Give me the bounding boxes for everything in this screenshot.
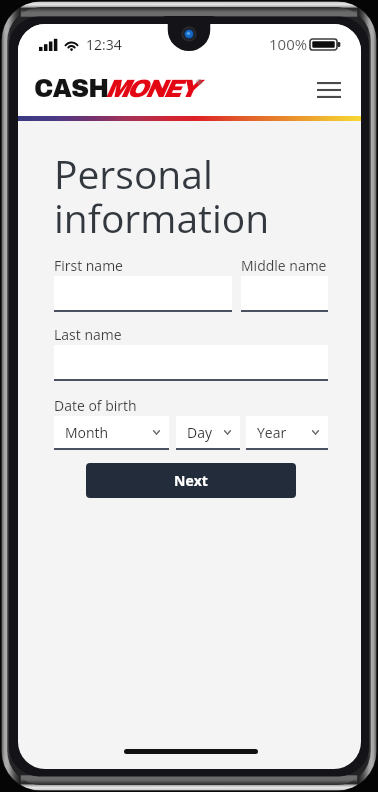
staticText: Middle name (241, 256, 327, 275)
button[interactable]: Menu (307, 68, 351, 112)
staticText: 12:34 (86, 35, 122, 54)
staticText: Next (174, 471, 208, 490)
staticText: MONEY (105, 75, 196, 102)
staticText: 100% (269, 34, 308, 54)
staticText: Last name (54, 325, 122, 344)
button[interactable]: Next (86, 463, 296, 498)
staticText: Day (187, 423, 212, 442)
button[interactable]: Month (54, 416, 169, 450)
staticText: Personal information (54, 147, 270, 244)
staticText: Date of birth (54, 396, 137, 415)
button[interactable]: Year (246, 416, 328, 450)
button[interactable]: Day (176, 416, 240, 450)
staticText: ® (196, 76, 203, 87)
staticText: First name (54, 256, 123, 275)
staticText: CASH (34, 75, 109, 102)
button[interactable] (54, 276, 232, 312)
button[interactable] (54, 345, 328, 381)
staticText: Year (257, 423, 287, 442)
button[interactable] (241, 276, 328, 312)
staticText: Month (65, 423, 109, 442)
